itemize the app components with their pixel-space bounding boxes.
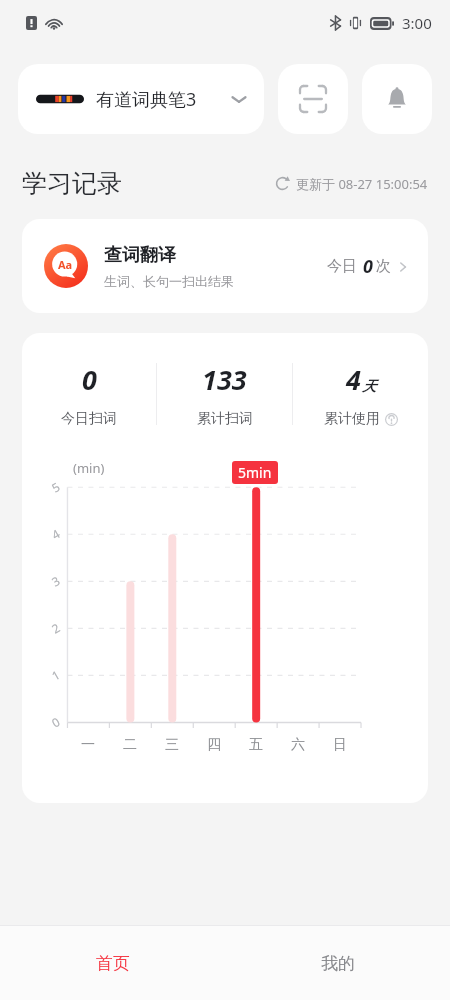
staticText: 五 [249, 736, 263, 754]
staticText: 有道词典笔3 [96, 87, 197, 112]
staticText: 生词、长句一扫出结果 [104, 273, 234, 289]
button[interactable]: Aa [22, 219, 428, 313]
button[interactable]: 首页 [0, 926, 225, 1000]
button[interactable]: 有道词典笔3 [18, 64, 264, 134]
button[interactable]: Notifications [362, 64, 432, 134]
staticText: 2 [48, 619, 63, 637]
staticText: 首页 [96, 953, 130, 974]
staticText: 四 [207, 736, 221, 754]
staticText: 查词翻译 [104, 244, 176, 267]
button[interactable]: Scan [278, 64, 348, 134]
staticText: (min) [73, 459, 105, 477]
staticText: 累计扫词 [197, 410, 253, 428]
staticText: 1 [48, 666, 63, 684]
staticText: 更新于 08-27 15:00:54 [296, 175, 428, 193]
staticText: 学习记录 [22, 168, 122, 199]
staticText: 0 [48, 713, 63, 731]
staticText: 3 [48, 572, 63, 590]
staticText: 5 [48, 478, 63, 496]
staticText: 三 [165, 736, 179, 754]
staticText: 4 [346, 361, 361, 398]
staticText: 天 [362, 378, 376, 396]
staticText: 133 [202, 361, 247, 398]
staticText: Aa [58, 257, 73, 272]
staticText: 累计使用 [324, 410, 380, 428]
staticText: 我的 [321, 953, 355, 974]
staticText: 5min [238, 463, 272, 482]
staticText: 二 [123, 736, 137, 754]
staticText: 0 [363, 254, 373, 279]
staticText: 0 [82, 361, 97, 398]
button[interactable]: 我的 [225, 926, 450, 1000]
staticText: 六 [291, 736, 305, 754]
button[interactable]: 133 [157, 357, 292, 431]
staticText: 日 [333, 736, 347, 754]
staticText: 一 [81, 736, 95, 754]
staticText: 4 [48, 525, 63, 543]
staticText: 今日扫词 [61, 410, 117, 428]
button[interactable]: 4 [293, 357, 428, 431]
button[interactable]: 0 [22, 357, 156, 431]
staticText: 次 [376, 257, 391, 276]
staticText: 今日 [327, 257, 357, 276]
staticText: 3:00 [402, 13, 432, 33]
